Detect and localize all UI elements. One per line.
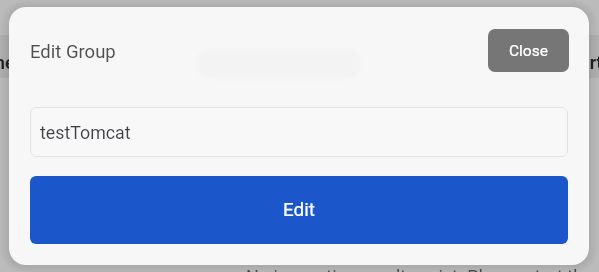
button[interactable]: Close [488, 29, 569, 72]
button[interactable]: testTomcat [30, 107, 568, 157]
button[interactable]: Edit [30, 176, 568, 244]
staticText: testTomcat [40, 122, 131, 143]
staticText: Close [509, 42, 548, 60]
staticText: Name [0, 53, 15, 74]
staticText: No inspection results exist. Please star… [246, 266, 593, 272]
staticText: Edit Group [30, 41, 116, 63]
staticText: Edit [283, 199, 315, 221]
staticText: Sort [569, 53, 599, 74]
